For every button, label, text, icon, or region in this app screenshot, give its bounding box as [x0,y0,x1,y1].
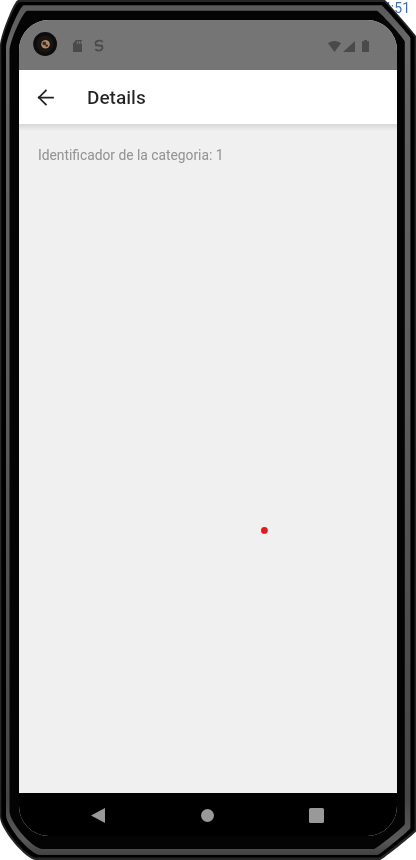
button[interactable]: Home [201,809,214,822]
staticText: Identificador de la categoria: 1 [38,147,224,163]
staticText: Details [87,86,146,108]
button[interactable]: Back [33,85,57,109]
button[interactable]: Recents [309,808,324,823]
button[interactable]: Back [91,808,105,823]
staticText: 4:51 [383,0,410,16]
